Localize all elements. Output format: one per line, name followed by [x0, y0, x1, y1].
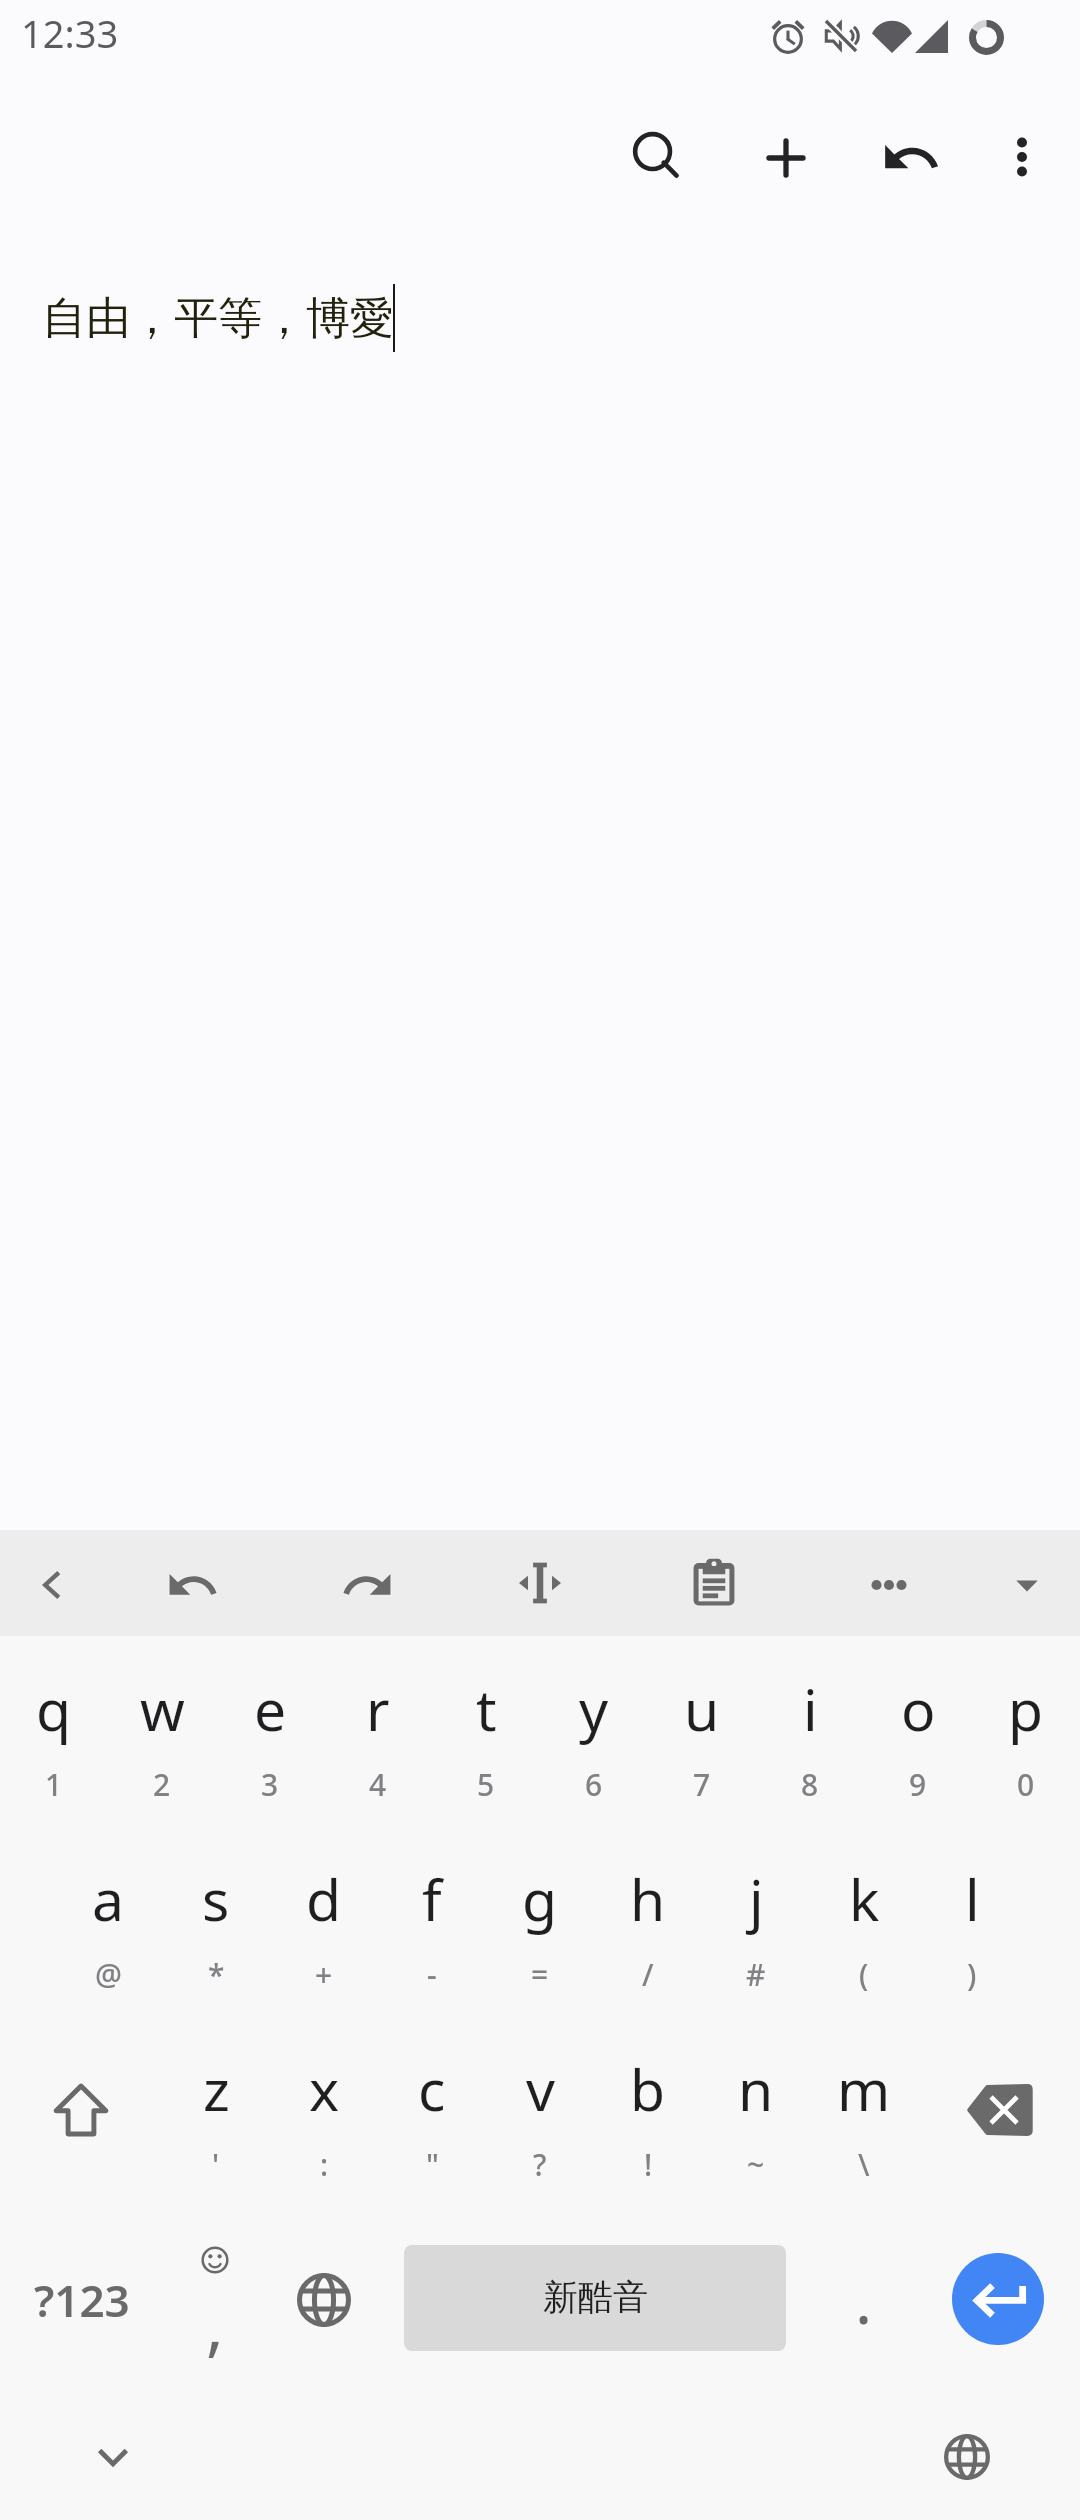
button[interactable]: u	[648, 1656, 756, 1846]
button[interactable]: h	[594, 1846, 702, 2036]
staticText: 7	[693, 1764, 711, 1805]
staticText: f	[422, 1860, 442, 1938]
staticText: 3	[261, 1764, 279, 1805]
staticText: p	[1008, 1670, 1044, 1748]
button[interactable]: x	[270, 2036, 378, 2226]
button[interactable]: f	[378, 1846, 486, 2036]
button[interactable]: c	[378, 2036, 486, 2226]
button[interactable]: Search	[594, 93, 722, 221]
button[interactable]: y	[540, 1656, 648, 1846]
button[interactable]: q	[0, 1656, 108, 1846]
staticText: r	[366, 1670, 390, 1748]
staticText: \	[858, 2144, 870, 2185]
staticText: *	[208, 1954, 225, 1995]
staticText: 6	[585, 1764, 603, 1805]
staticText: b	[630, 2050, 666, 2128]
staticText: q	[36, 1670, 72, 1748]
staticText: i	[803, 1670, 818, 1748]
button[interactable]: Add	[722, 94, 850, 222]
staticText: x	[309, 2050, 340, 2128]
button[interactable]: Collapse keyboard	[974, 1533, 1080, 1639]
staticText: z	[203, 2050, 230, 2128]
staticText: u	[684, 1670, 720, 1748]
staticText: o	[901, 1670, 936, 1748]
button[interactable]: b	[594, 2036, 702, 2226]
button[interactable]: Hide keyboard	[43, 2387, 183, 2520]
button[interactable]: Emoji and comma	[164, 2226, 266, 2374]
button[interactable]: 新酷音	[404, 2245, 786, 2351]
staticText: d	[306, 1860, 342, 1938]
button[interactable]: d	[270, 1846, 378, 2036]
staticText: +	[315, 1954, 333, 1995]
button[interactable]: Switch language	[897, 2387, 1037, 2520]
staticText: :	[320, 2144, 329, 2185]
staticText: v	[526, 2050, 555, 2128]
staticText: ~	[747, 2144, 765, 2185]
button[interactable]: p	[972, 1656, 1080, 1846]
button[interactable]: n	[702, 2036, 810, 2226]
staticText: y	[579, 1670, 609, 1748]
button[interactable]: e	[216, 1656, 324, 1846]
staticText: s	[202, 1860, 230, 1938]
button[interactable]: Undo	[139, 1532, 245, 1638]
button[interactable]: More	[836, 1532, 942, 1638]
button[interactable]: k	[810, 1846, 918, 2036]
button[interactable]: ?123	[0, 2236, 164, 2364]
staticText: '	[212, 2144, 220, 2185]
staticText: w	[140, 1670, 185, 1748]
staticText: 5	[477, 1764, 495, 1805]
staticText: @	[95, 1954, 122, 1995]
button[interactable]: i	[756, 1656, 864, 1846]
button[interactable]: Back	[0, 1532, 105, 1638]
staticText: g	[522, 1860, 558, 1938]
staticText: c	[418, 2050, 446, 2128]
staticText: .	[855, 2256, 873, 2343]
button[interactable]: Backspace	[918, 2042, 1080, 2177]
button[interactable]: Redo	[314, 1532, 420, 1638]
button[interactable]: More options	[958, 93, 1080, 221]
staticText: 新酷音	[543, 2275, 648, 2319]
button[interactable]: t	[432, 1656, 540, 1846]
button[interactable]: a	[54, 1846, 162, 2036]
button[interactable]: Clipboard	[661, 1530, 767, 1636]
staticText: #	[746, 1954, 766, 1995]
button[interactable]: z	[162, 2036, 270, 2226]
button[interactable]: o	[864, 1656, 972, 1846]
button[interactable]: Enter	[952, 2253, 1044, 2345]
staticText: =	[531, 1954, 549, 1995]
staticText: (	[859, 1954, 869, 1995]
staticText: 9	[909, 1764, 927, 1805]
button[interactable]: Change keyboard language	[272, 2236, 376, 2364]
button[interactable]: s	[162, 1846, 270, 2036]
staticText: 4	[369, 1764, 387, 1805]
staticText: e	[254, 1670, 287, 1748]
staticText: !	[644, 2144, 653, 2185]
staticText: -	[427, 1954, 437, 1995]
button[interactable]: r	[324, 1656, 432, 1846]
staticText: k	[849, 1860, 880, 1938]
button[interactable]: w	[108, 1656, 216, 1846]
button[interactable]: v	[486, 2036, 594, 2226]
button[interactable]: m	[810, 2036, 918, 2226]
button[interactable]: l	[918, 1846, 1026, 2036]
button[interactable]: Shift	[0, 2042, 162, 2177]
staticText: 自由，平等，博愛	[42, 291, 394, 346]
button[interactable]: Move cursor	[487, 1530, 593, 1636]
button[interactable]: j	[702, 1846, 810, 2036]
button[interactable]: .	[812, 2236, 916, 2364]
staticText: l	[965, 1860, 980, 1938]
staticText: 12:33	[21, 7, 119, 59]
staticText: ?	[533, 2144, 547, 2185]
staticText: 0	[1017, 1764, 1035, 1805]
staticText: h	[630, 1860, 666, 1938]
staticText: 8	[801, 1764, 819, 1805]
staticText: )	[967, 1954, 977, 1995]
staticText: "	[426, 2144, 439, 2185]
staticText: n	[738, 2050, 774, 2128]
button[interactable]: g	[486, 1846, 594, 2036]
staticText: 1	[45, 1764, 63, 1805]
staticText: ,	[206, 2279, 224, 2369]
staticText: j	[749, 1860, 764, 1938]
staticText: a	[92, 1860, 124, 1938]
button[interactable]: Undo	[847, 94, 975, 222]
